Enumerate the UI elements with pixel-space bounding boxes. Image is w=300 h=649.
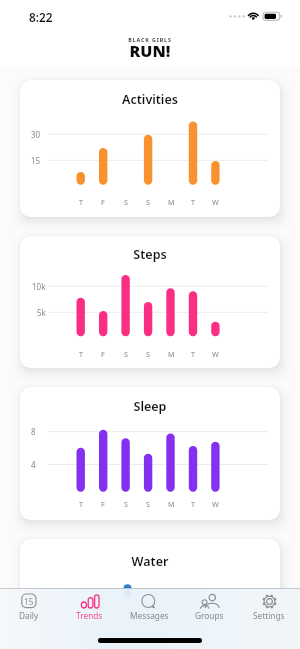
staticText: 15 [24,596,34,607]
staticText: W [212,499,219,509]
staticText: S [146,197,150,207]
staticText: T [79,349,83,359]
button[interactable]: Steps [20,236,280,368]
staticText: M [168,499,175,509]
staticText: T [79,197,83,207]
staticText: 10k [32,281,46,292]
staticText: Sleep [20,398,280,415]
button[interactable]: 15 [0,588,59,628]
button[interactable]: Groups [179,588,239,628]
staticText: Settings [253,610,285,621]
button[interactable]: Trends [59,588,119,628]
staticText: 5k [37,307,46,318]
button[interactable]: Messages [119,588,179,628]
staticText: BLACK GIRLS [0,36,300,43]
staticText: S [124,197,128,207]
staticText: M [168,349,175,359]
staticText: T [191,349,195,359]
staticText: T [191,197,195,207]
staticText: S [124,349,128,359]
staticText: Water [20,553,280,570]
staticText: 15 [31,155,41,166]
staticText: S [124,499,128,509]
staticText: 8:22 [29,9,53,25]
staticText: Trends [76,610,103,621]
staticText: W [212,349,219,359]
staticText: S [146,499,150,509]
staticText: F [101,197,105,207]
button[interactable]: Water [20,539,280,649]
staticText: F [101,499,105,509]
staticText: 30 [31,129,41,140]
button[interactable]: Activities [20,80,280,217]
staticText: Groups [195,610,224,621]
staticText: F [101,349,105,359]
staticText: RUN! [0,40,300,62]
staticText: T [79,499,83,509]
staticText: 8 [31,426,36,437]
staticText: 4 [31,459,36,470]
staticText: Daily [19,610,39,621]
staticText: Activities [20,91,280,108]
button[interactable]: Settings [239,588,299,628]
staticText: Messages [130,610,169,621]
staticText: M [168,197,175,207]
staticText: Steps [20,246,280,263]
staticText: W [212,197,219,207]
button[interactable]: Sleep [20,387,280,520]
staticText: T [191,499,195,509]
staticText: S [146,349,150,359]
